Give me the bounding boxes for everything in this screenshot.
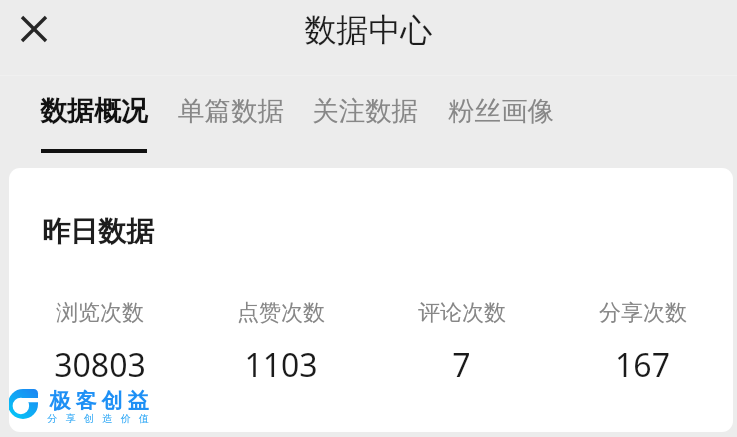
staticText: 粉丝画像	[448, 94, 554, 127]
button[interactable]: 数据概况	[40, 94, 148, 156]
staticText: 单篇数据	[178, 94, 284, 127]
staticText: 极客创益	[47, 388, 151, 414]
staticText: 点赞次数	[237, 299, 325, 327]
button[interactable]: 关注数据	[312, 94, 418, 156]
staticText: 昨日数据	[42, 214, 154, 249]
staticText: 数据中心	[0, 10, 737, 50]
staticText: 分享次数	[599, 299, 687, 327]
staticText: 评论次数	[418, 299, 506, 327]
staticText: 分享创造价值	[47, 412, 158, 425]
staticText: 30803	[54, 343, 146, 387]
staticText: 1103	[244, 343, 318, 387]
staticText: 数据概况	[40, 94, 148, 128]
staticText: 7	[452, 343, 471, 387]
staticText: 浏览次数	[56, 299, 144, 327]
staticText: 167	[615, 343, 670, 387]
button[interactable]: 粉丝画像	[448, 94, 554, 156]
staticText: 关注数据	[312, 94, 418, 127]
button[interactable]: Close	[11, 6, 56, 51]
button[interactable]: 单篇数据	[178, 94, 284, 156]
